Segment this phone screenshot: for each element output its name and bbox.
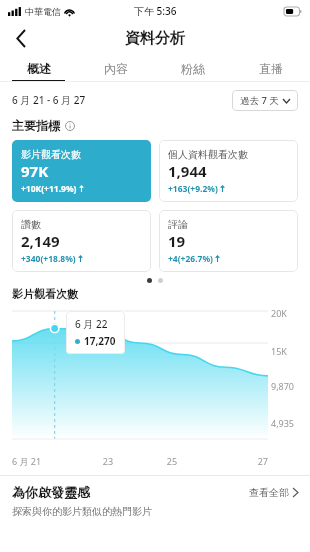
staticText: 中華電信 bbox=[25, 6, 61, 17]
staticText: 過去 7 天 bbox=[240, 94, 279, 107]
staticText: 讚數 bbox=[21, 218, 41, 231]
staticText: 概述 bbox=[27, 61, 51, 76]
staticText: +163(+9.2%) bbox=[168, 183, 218, 194]
button[interactable]: 粉絲 bbox=[154, 54, 232, 82]
button[interactable]: 讚數 bbox=[12, 210, 151, 272]
button[interactable]: 影片觀看次數 bbox=[12, 140, 151, 202]
staticText: 內容 bbox=[104, 61, 128, 76]
staticText: 20K bbox=[271, 307, 287, 319]
staticText: 4,935 bbox=[271, 417, 295, 429]
staticText: 為你啟發靈感 bbox=[12, 484, 90, 500]
staticText: 探索與你的影片類似的熱門影片 bbox=[12, 505, 152, 518]
button[interactable]: 概述 bbox=[0, 54, 77, 82]
staticText: 評論 bbox=[168, 218, 188, 231]
staticText: 直播 bbox=[259, 61, 283, 76]
staticText: 下午 5:36 bbox=[134, 4, 177, 18]
staticText: +4(+26.7%) bbox=[168, 253, 213, 264]
staticText: 影片觀看次數 bbox=[21, 148, 81, 161]
button[interactable]: 個人資料觀看次數 bbox=[159, 140, 298, 202]
staticText: 6 月 21 - 6 月 27 bbox=[12, 93, 86, 107]
staticText: 2,149 bbox=[21, 231, 60, 251]
staticText: 6 月 22 bbox=[75, 317, 108, 331]
staticText: 97K bbox=[21, 161, 49, 181]
staticText: 27 bbox=[204, 455, 268, 467]
staticText: 個人資料觀看次數 bbox=[168, 148, 248, 161]
staticText: 17,270 bbox=[84, 334, 116, 348]
staticText: 19 bbox=[168, 231, 186, 251]
staticText: 查看全部 bbox=[249, 486, 289, 499]
button[interactable]: 評論 bbox=[159, 210, 298, 272]
staticText: +340(+18.8%) bbox=[21, 253, 76, 264]
staticText: 9,870 bbox=[271, 380, 295, 392]
button[interactable]: 查看全部 bbox=[249, 486, 298, 499]
button[interactable]: 內容 bbox=[77, 54, 154, 82]
staticText: 影片觀看次數 bbox=[12, 287, 78, 301]
staticText: +10K(+11.9%) bbox=[21, 183, 77, 194]
button[interactable]: 直播 bbox=[232, 54, 310, 82]
button[interactable]: 過去 7 天 bbox=[232, 90, 298, 111]
button[interactable]: Back bbox=[4, 22, 38, 54]
staticText: 23 bbox=[76, 455, 140, 467]
staticText: 1,944 bbox=[168, 161, 207, 181]
staticText: 資料分析 bbox=[125, 29, 185, 48]
staticText: 粉絲 bbox=[181, 61, 205, 76]
staticText: 15K bbox=[271, 345, 287, 357]
staticText: 6 月 21 bbox=[12, 455, 76, 467]
staticText: 25 bbox=[140, 455, 204, 467]
button[interactable]: Info bbox=[64, 120, 76, 132]
staticText: 主要指標 bbox=[12, 118, 60, 133]
